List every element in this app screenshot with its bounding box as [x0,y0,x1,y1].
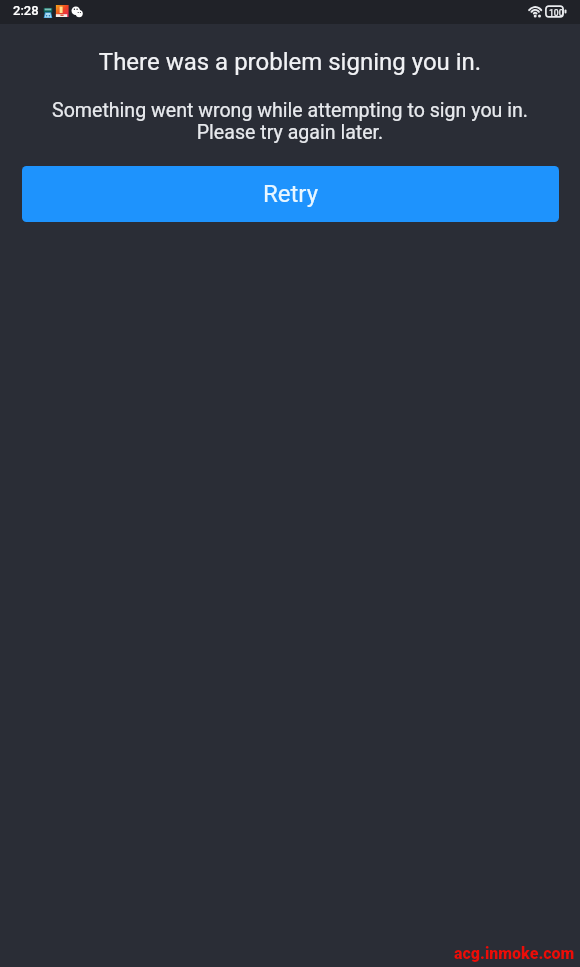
button[interactable]: Retry [22,166,559,222]
staticText: acg.inmoke.com [454,944,575,963]
staticText: Retry [263,180,319,208]
other: Wifi [529,5,545,18]
staticText: 2:28 [13,3,39,18]
staticText: Something went wrong while attempting to… [0,99,580,144]
staticText: 100 [549,8,564,18]
staticText: There was a problem signing you in. [0,48,580,76]
